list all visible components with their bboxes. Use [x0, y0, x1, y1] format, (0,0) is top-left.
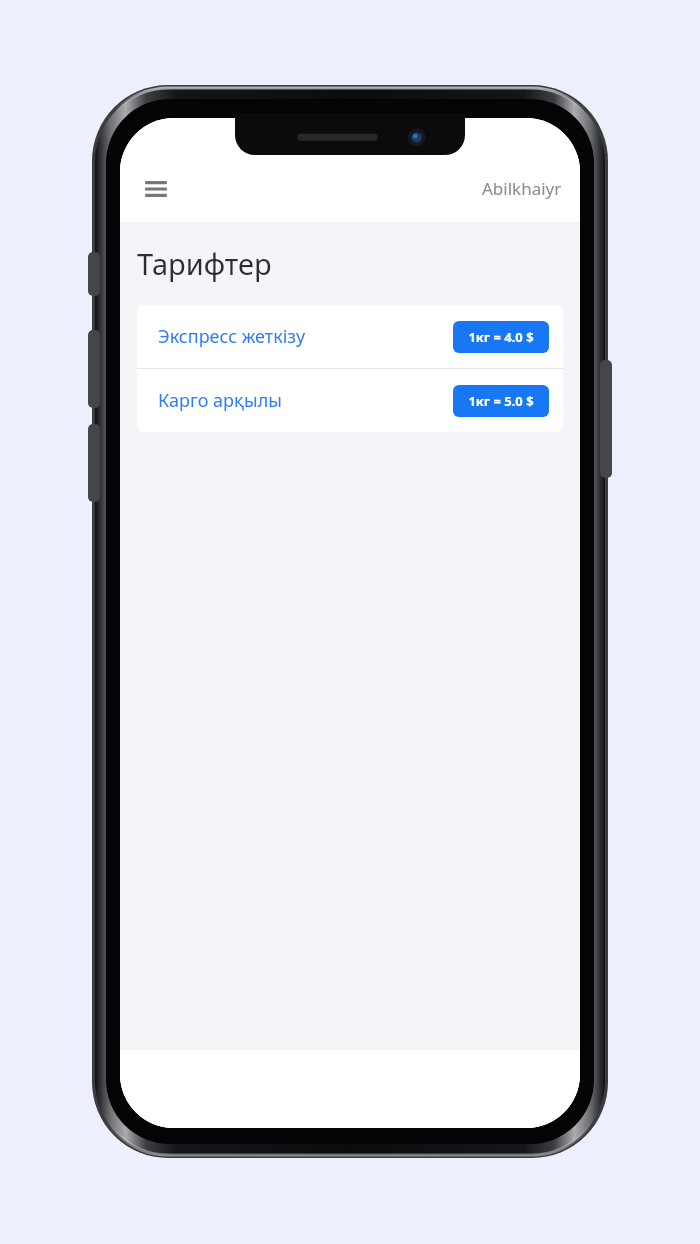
button[interactable]: Карго арқылы	[137, 369, 563, 432]
staticText: 1кг = 4.0 $	[468, 328, 534, 346]
button[interactable]: Abilkhaiyr	[478, 171, 566, 206]
button[interactable]: 1кг = 5.0 $	[453, 385, 549, 417]
button[interactable]: Экспресс жеткізу	[137, 305, 563, 368]
staticText: 1кг = 5.0 $	[468, 392, 534, 410]
staticText: Карго арқылы	[158, 388, 453, 413]
button[interactable]: Open navigation menu	[136, 169, 176, 209]
staticText: Экспресс жеткізу	[158, 324, 453, 349]
staticText: Abilkhaiyr	[482, 177, 562, 200]
button[interactable]: 1кг = 4.0 $	[453, 321, 549, 353]
staticText: Тарифтер	[137, 244, 272, 283]
